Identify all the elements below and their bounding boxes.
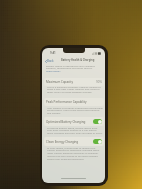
staticText: Optimized Battery Charging: [46, 120, 86, 124]
staticText: Peak Performance Capability: [46, 100, 87, 104]
button[interactable]: Back: [44, 58, 55, 64]
staticText: Battery Health & Charging: [61, 58, 95, 62]
staticText: Battery health is affected by your charg…: [46, 64, 99, 73]
staticText: To reduce battery aging, iPhone learns f…: [47, 126, 103, 135]
staticText: 90%: [96, 80, 102, 84]
button[interactable]: Maximum Capacity: [44, 78, 104, 86]
staticText: In your region, iPhone tries to reduce y…: [47, 146, 103, 161]
button[interactable]: Optimized Battery Charging: [44, 117, 104, 126]
button[interactable]: Peak Performance Capability: [44, 98, 104, 106]
staticText: Maximum Capacity: [46, 80, 73, 84]
staticText: 9:41: [50, 51, 56, 55]
button[interactable]: Toggle Clean Energy Charging: [93, 139, 102, 144]
staticText: Clean Energy Charging: [46, 140, 79, 144]
staticText: Back: [47, 59, 54, 63]
button[interactable]: Clean Energy Charging: [44, 137, 104, 146]
button[interactable]: Toggle Optimized Battery Charging: [93, 119, 102, 124]
staticText: This is a measure of battery capacity re…: [47, 85, 103, 94]
staticText: Your battery is currently supporting nor…: [47, 106, 103, 115]
